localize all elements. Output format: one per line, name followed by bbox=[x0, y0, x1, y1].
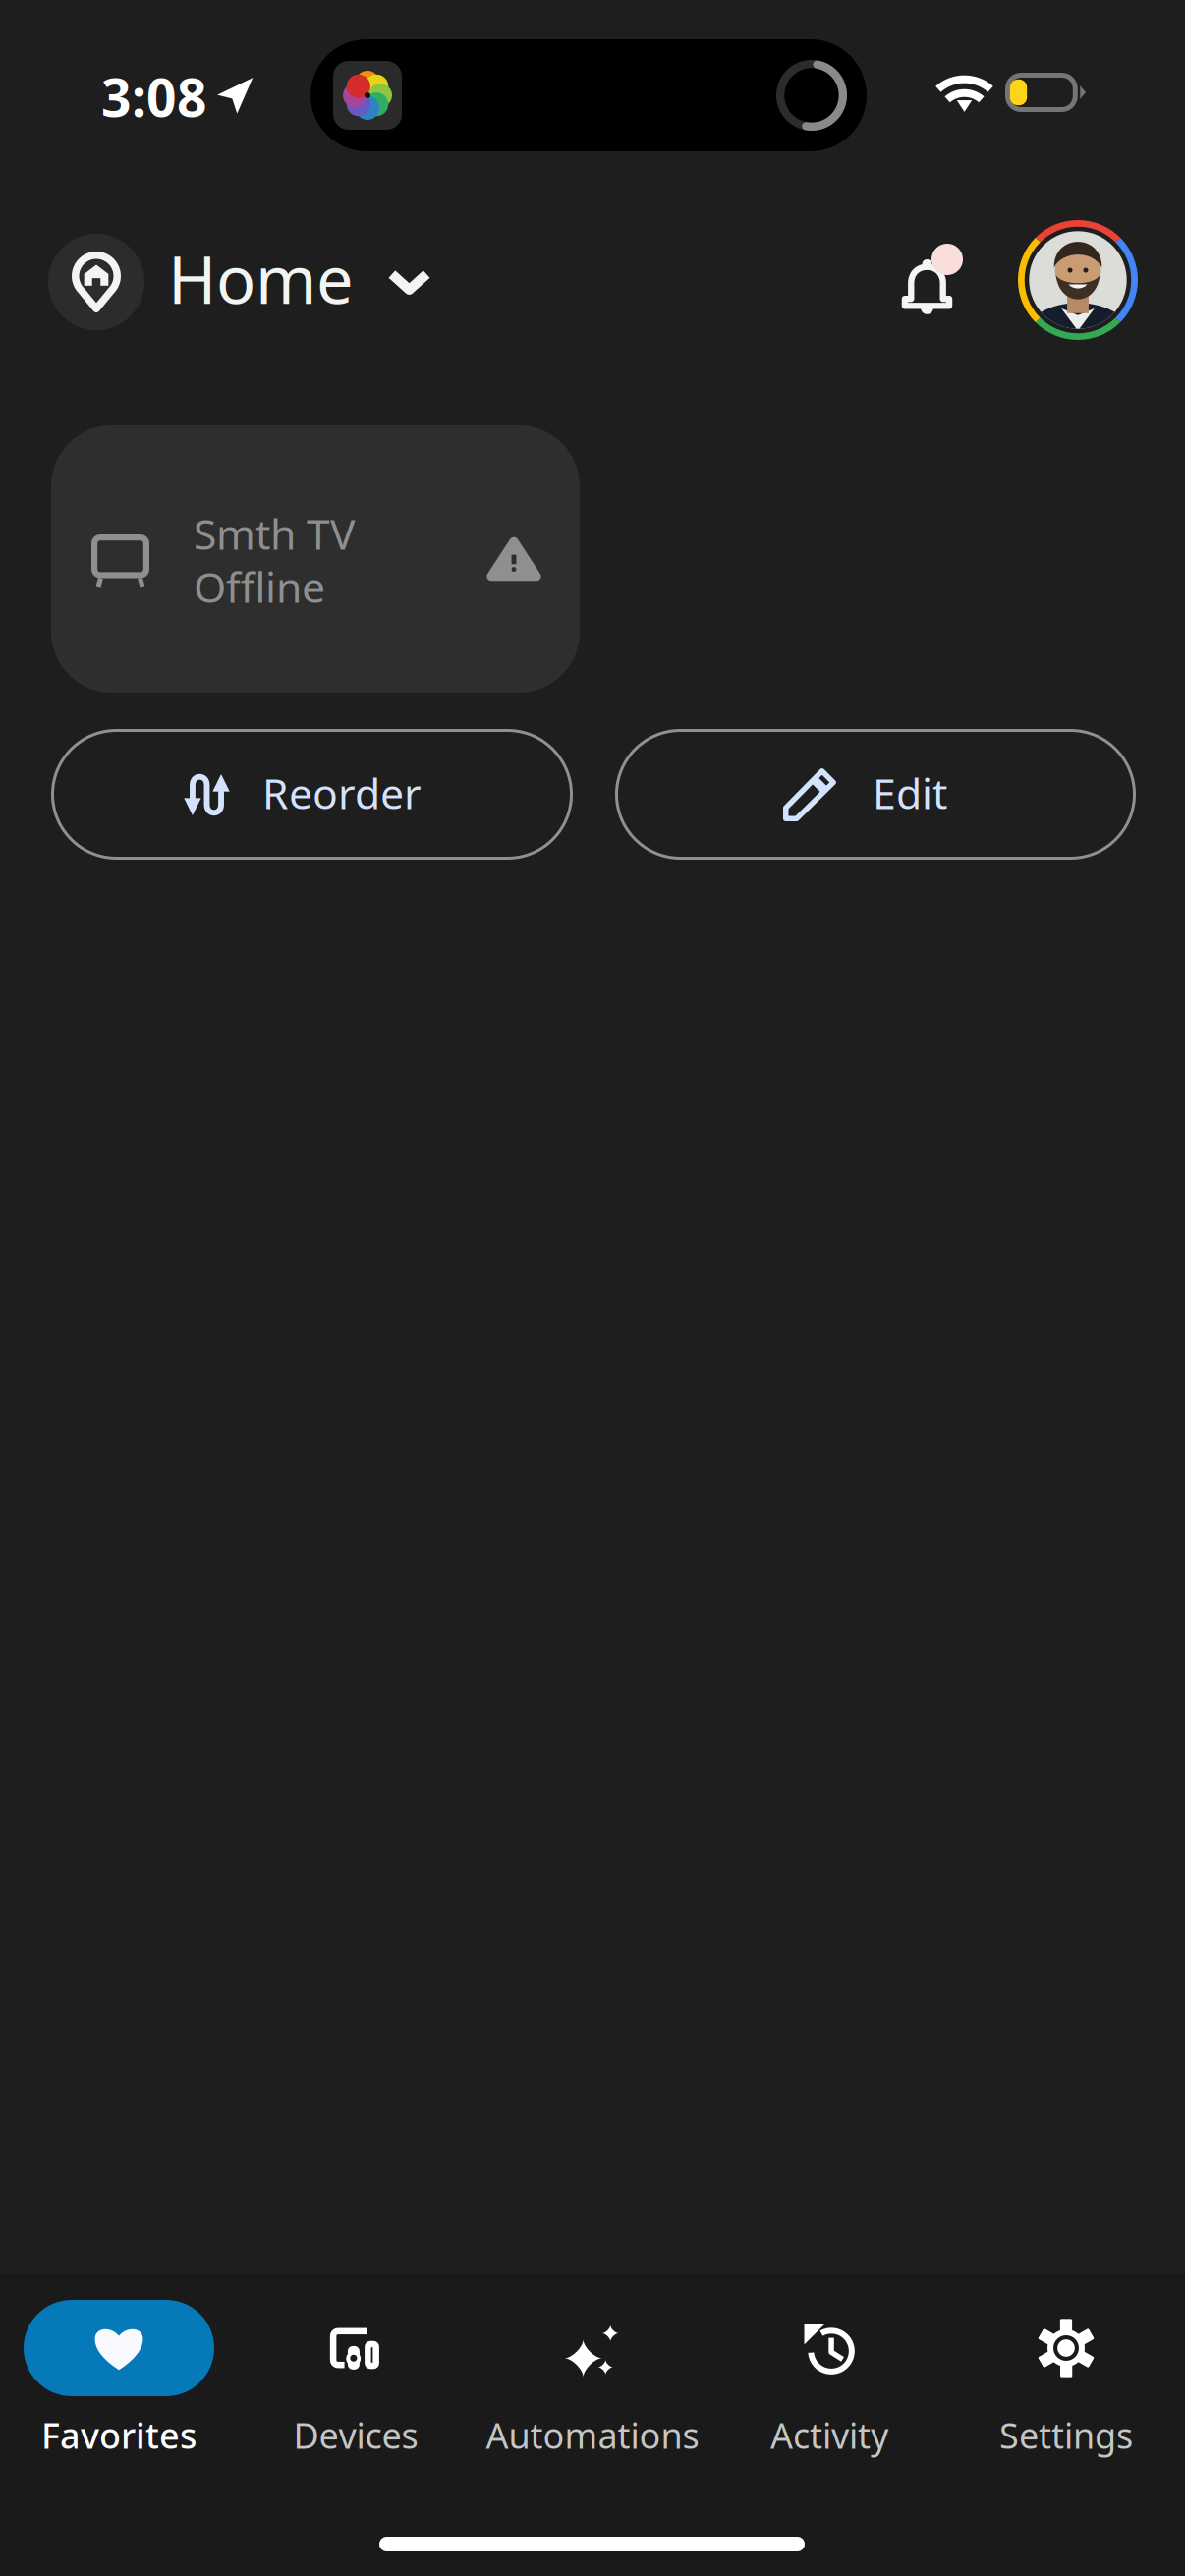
button[interactable]: Devices bbox=[237, 2300, 474, 2459]
button[interactable]: Home bbox=[0, 214, 452, 342]
staticText: Smth TV bbox=[194, 505, 356, 562]
staticText: Edit bbox=[873, 764, 947, 821]
staticText: 3:08 bbox=[101, 61, 207, 132]
button[interactable]: Account bbox=[1018, 220, 1138, 340]
button[interactable]: Activity bbox=[711, 2300, 948, 2459]
button[interactable]: Automations bbox=[474, 2300, 711, 2459]
staticText: Offline bbox=[194, 558, 325, 615]
staticText: Favorites bbox=[41, 2411, 197, 2459]
button[interactable]: Reorder bbox=[51, 729, 573, 860]
button[interactable]: Settings bbox=[948, 2300, 1185, 2459]
staticText: Reorder bbox=[262, 764, 422, 821]
button[interactable]: Notifications bbox=[875, 215, 996, 333]
staticText: Home bbox=[168, 234, 354, 323]
staticText: Automations bbox=[486, 2411, 699, 2459]
button[interactable]: Smth TV bbox=[51, 425, 580, 693]
button[interactable]: Favorites bbox=[0, 2300, 237, 2459]
staticText: Devices bbox=[293, 2411, 418, 2459]
staticText: Activity bbox=[770, 2411, 888, 2459]
button[interactable]: Edit bbox=[615, 729, 1136, 860]
staticText: Settings bbox=[999, 2411, 1133, 2459]
